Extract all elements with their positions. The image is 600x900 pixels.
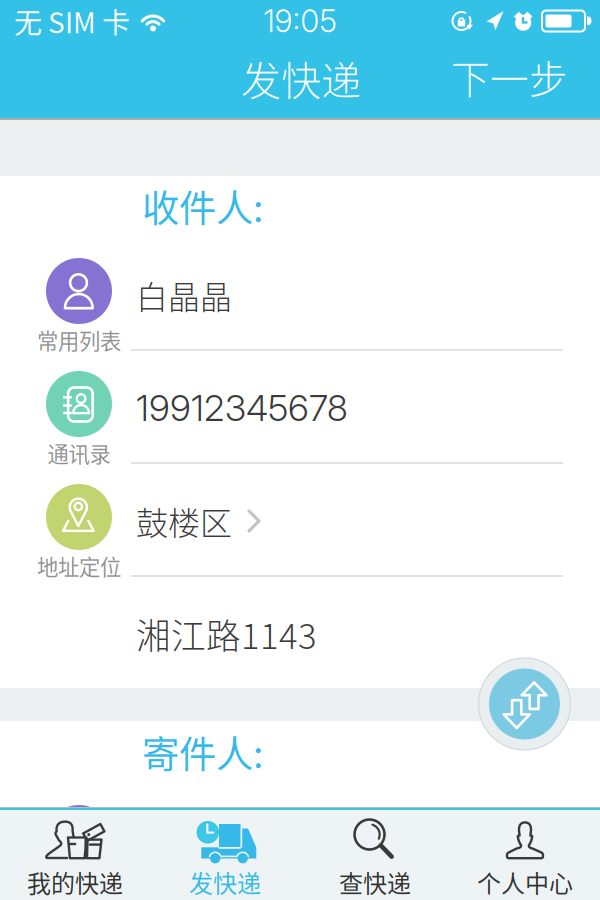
button[interactable]: 个人中心 [450,810,600,900]
staticText: 我的快递 [27,865,123,899]
staticText: 通讯录 [47,438,110,468]
button[interactable]: 查快递 [300,810,450,900]
staticText: 常用列表 [37,325,121,355]
staticText: 地址定位 [37,551,121,581]
staticText: 发快递 [189,865,261,899]
button[interactable]: 常用列表 [18,258,140,358]
staticText: 收件人: [142,179,263,233]
staticText: 鼓楼区 [136,498,232,544]
button[interactable]: 下一步 [429,35,590,119]
staticText: 19912345678 [136,386,348,430]
staticText: 19:05 [263,2,336,39]
staticText: 个人中心 [477,865,573,899]
staticText: 白晶晶 [136,272,232,318]
button[interactable]: 通讯录 [18,371,140,471]
staticText: 下一步 [451,49,568,105]
staticText: 湘江路1143 [136,609,317,659]
staticText: 寄件人: [142,725,263,779]
button[interactable]: 地址定位 [18,484,140,584]
button[interactable]: 发快递 [150,810,300,900]
staticText: 无 SIM 卡 [14,1,130,41]
button[interactable]: 我的快递 [0,810,150,900]
staticText: 发快递 [241,49,361,107]
staticText: 查快递 [339,865,411,899]
button[interactable]: Swap sender and receiver [478,658,570,750]
